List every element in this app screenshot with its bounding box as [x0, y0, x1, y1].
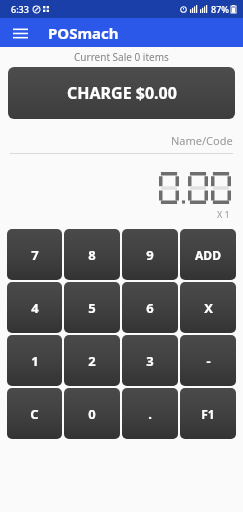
- button[interactable]: Open navigation menu: [7, 20, 33, 46]
- staticText: 8: [88, 246, 96, 264]
- button[interactable]: 7: [7, 229, 62, 280]
- staticText: POSmach: [48, 23, 119, 43]
- staticText: Name/Code: [171, 133, 233, 148]
- button[interactable]: F1: [180, 388, 236, 439]
- button[interactable]: 1: [7, 335, 62, 386]
- staticText: -: [206, 352, 211, 370]
- staticText: 4: [31, 299, 39, 317]
- button[interactable]: 5: [64, 282, 120, 333]
- staticText: 3: [146, 352, 154, 370]
- staticText: 1: [31, 352, 39, 370]
- button[interactable]: 3: [122, 335, 178, 386]
- button[interactable]: ADD: [180, 229, 236, 280]
- staticText: 7: [31, 246, 39, 264]
- staticText: 0: [88, 405, 96, 423]
- staticText: 5: [88, 299, 96, 317]
- staticText: 6: [146, 299, 154, 317]
- button[interactable]: X: [180, 282, 236, 333]
- staticText: ADD: [195, 247, 221, 263]
- staticText: C: [30, 405, 39, 423]
- staticText: X: [204, 299, 213, 317]
- button[interactable]: -: [180, 335, 236, 386]
- button[interactable]: C: [7, 388, 62, 439]
- staticText: CHARGE $0.00: [67, 82, 177, 104]
- staticText: 87%: [211, 3, 229, 15]
- staticText: Current Sale 0 items: [74, 50, 169, 64]
- button[interactable]: 4: [7, 282, 62, 333]
- staticText: F1: [201, 406, 215, 422]
- staticText: 2: [88, 352, 96, 370]
- button[interactable]: 8: [64, 229, 120, 280]
- staticText: X 1: [217, 208, 230, 220]
- staticText: .: [148, 405, 152, 423]
- button[interactable]: CHARGE $0.00: [8, 67, 235, 119]
- staticText: 6:33: [11, 3, 29, 15]
- button[interactable]: 9: [122, 229, 178, 280]
- button[interactable]: 6: [122, 282, 178, 333]
- button[interactable]: .: [122, 388, 178, 439]
- button[interactable]: 2: [64, 335, 120, 386]
- button[interactable]: Name/Code: [10, 133, 233, 154]
- button[interactable]: 0: [64, 388, 120, 439]
- staticText: 9: [146, 246, 154, 264]
